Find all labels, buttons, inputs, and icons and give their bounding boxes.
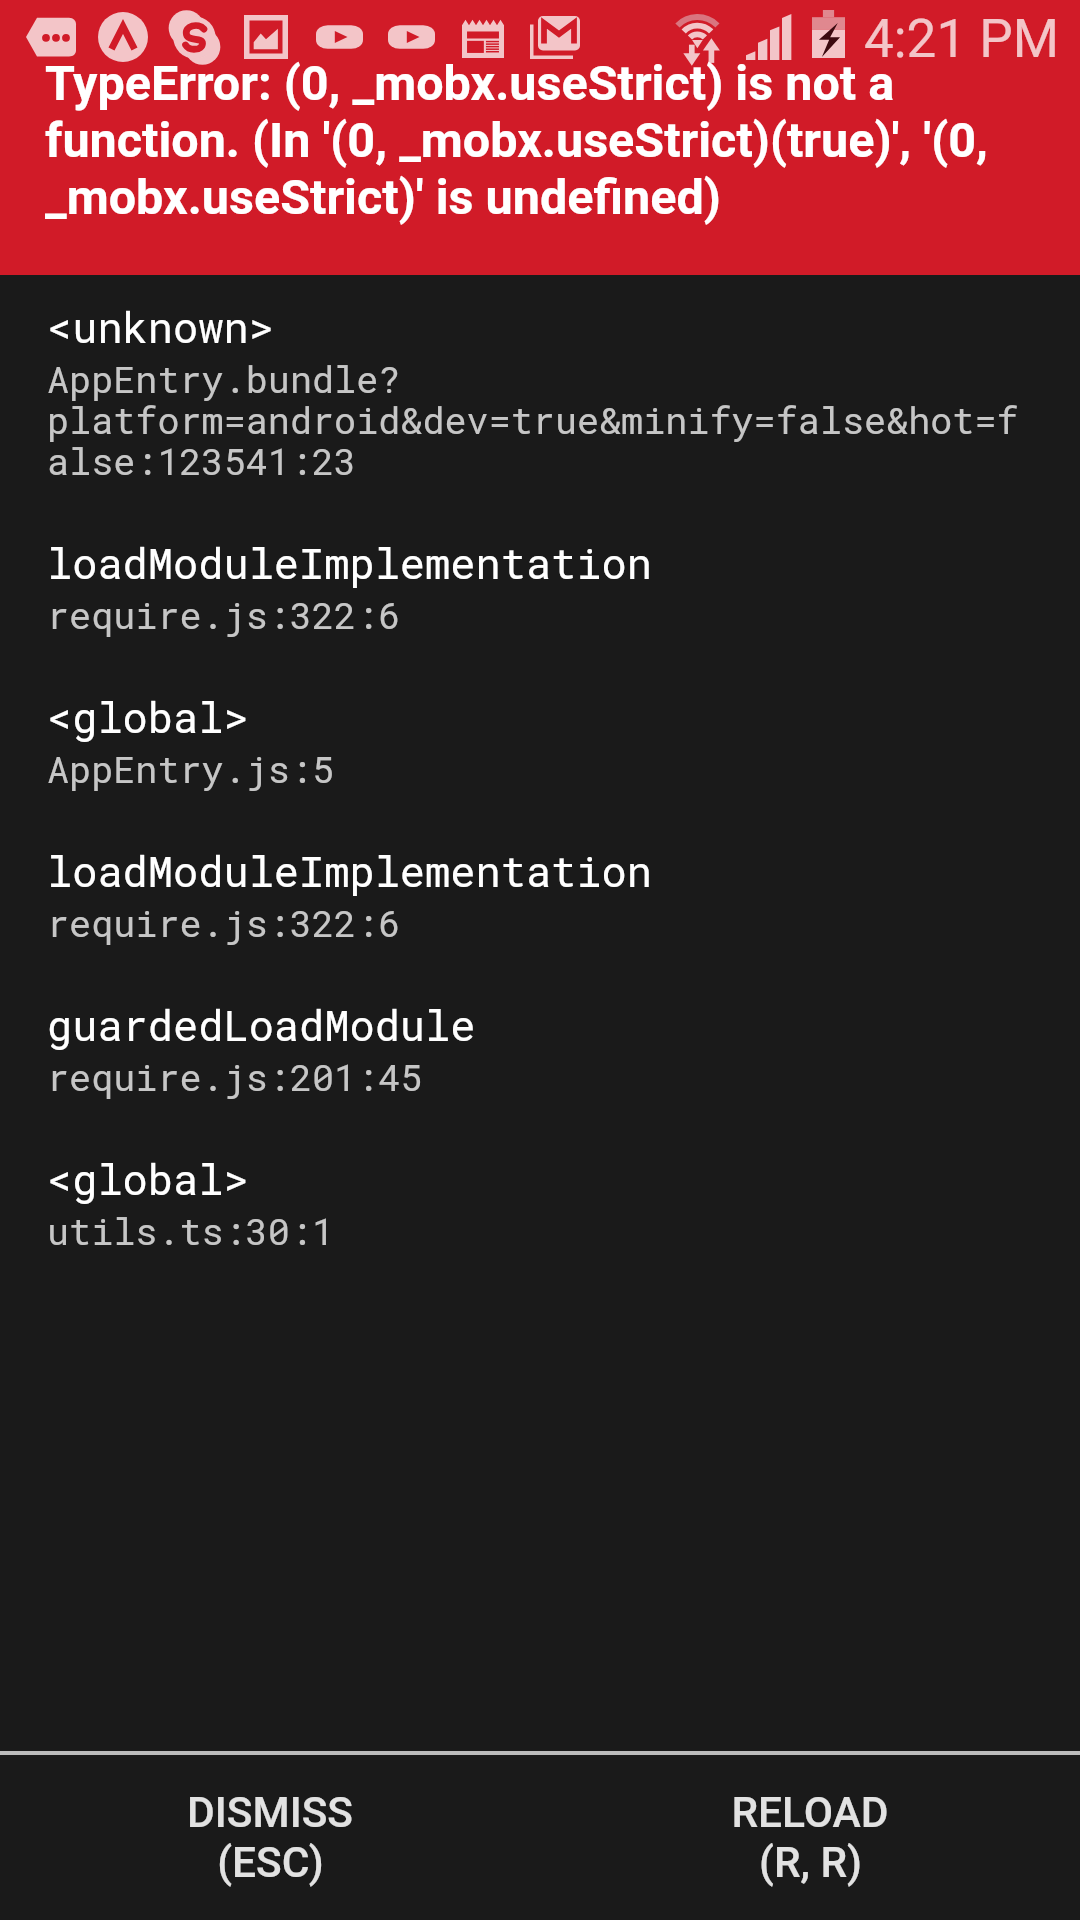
staticText: loadModuleImplementation — [47, 535, 652, 590]
staticText: require.js:201:45 — [47, 1052, 423, 1101]
button[interactable]: DISMISS — [0, 1755, 540, 1920]
staticText: (R, R) — [759, 1838, 862, 1888]
other: YouTube — [388, 21, 435, 53]
staticText: loadModuleImplementation — [47, 843, 652, 898]
staticText: <unknown> — [47, 299, 274, 354]
staticText: DISMISS — [187, 1788, 353, 1838]
other: Wi-Fi — [668, 8, 724, 64]
other: Signal — [746, 14, 794, 60]
button[interactable]: RELOAD — [540, 1755, 1080, 1920]
staticText: TypeError: (0, _mobx.useStrict) is not a… — [45, 55, 988, 226]
staticText: utils.ts:30:1 — [47, 1206, 335, 1255]
other: Photos — [244, 15, 288, 59]
staticText: guardedLoadModule — [47, 997, 476, 1052]
button[interactable]: guardedLoadModule — [47, 997, 1080, 1151]
button[interactable]: loadModuleImplementation — [47, 843, 1080, 997]
staticText: 4:21 PM — [864, 8, 1060, 70]
staticText: <global> — [47, 1151, 249, 1206]
button[interactable]: <global> — [47, 1151, 1080, 1305]
staticText: <global> — [47, 689, 249, 744]
other: News — [462, 19, 504, 58]
button[interactable]: loadModuleImplementation — [47, 535, 1080, 689]
other: Messages — [26, 17, 76, 57]
other: Notification — [98, 12, 148, 62]
other: Skype — [171, 14, 218, 61]
other: YouTube — [316, 21, 363, 53]
staticText: (ESC) — [217, 1838, 324, 1888]
staticText: AppEntry.bundle? platform=android&dev=tr… — [47, 354, 1019, 485]
button[interactable]: <unknown> — [47, 299, 1080, 535]
staticText: require.js:322:6 — [47, 590, 401, 639]
other: Gmail — [530, 16, 580, 59]
staticText: AppEntry.js:5 — [47, 744, 335, 793]
staticText: RELOAD — [731, 1788, 889, 1838]
button[interactable]: <global> — [47, 689, 1080, 843]
other: Battery — [812, 10, 845, 58]
staticText: require.js:322:6 — [47, 898, 401, 947]
